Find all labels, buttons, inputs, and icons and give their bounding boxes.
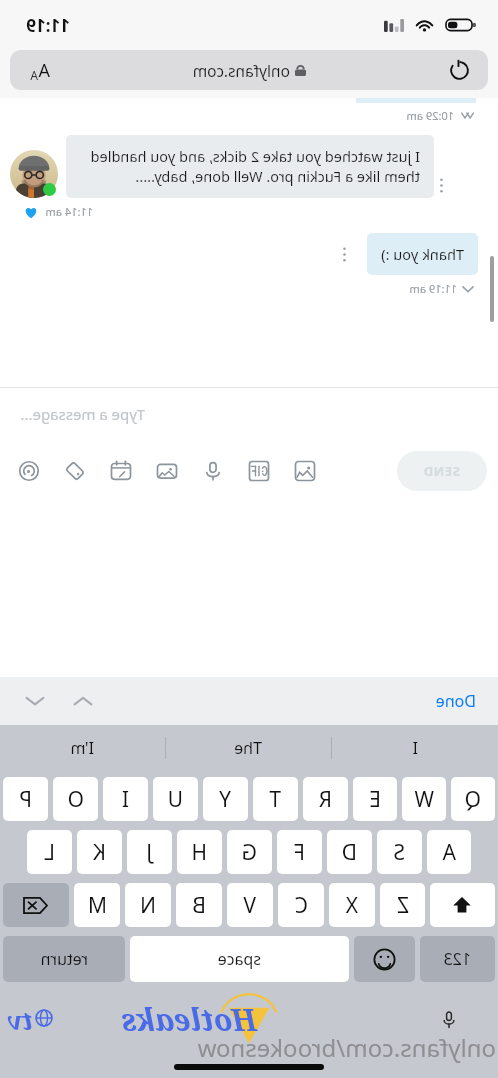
button[interactable]: Emoji [354, 936, 415, 982]
staticText: P [19, 785, 32, 814]
staticText: K [93, 838, 106, 867]
staticText: I [121, 785, 129, 814]
button[interactable]: Reload [444, 54, 476, 86]
staticText: A [442, 838, 456, 867]
staticText: E [369, 785, 381, 814]
staticText: 11:19 [26, 14, 70, 37]
button[interactable]: P [3, 777, 48, 821]
staticText: J [146, 838, 152, 867]
staticText: A [30, 67, 38, 83]
button[interactable]: S [377, 830, 422, 874]
staticText: G [241, 838, 257, 867]
button[interactable]: Schedule [106, 456, 136, 486]
staticText: 11:14 am [45, 204, 93, 219]
button[interactable]: Next field [20, 686, 50, 716]
staticText: I'm [70, 737, 94, 759]
button[interactable]: D [327, 830, 372, 874]
button[interactable]: Done [435, 690, 476, 712]
staticText: H [191, 838, 207, 867]
button[interactable]: A [427, 830, 471, 874]
button[interactable]: R [303, 777, 348, 821]
staticText: tv [6, 1002, 33, 1037]
button[interactable]: H [177, 830, 222, 874]
button[interactable]: F [277, 830, 322, 874]
button[interactable]: V [227, 883, 273, 927]
staticText: T [269, 785, 281, 814]
staticText: 10:29 am [406, 108, 454, 123]
button[interactable]: X [329, 883, 375, 927]
button[interactable]: T [253, 777, 298, 821]
button[interactable]: Message options [337, 241, 353, 267]
button[interactable]: Previous field [68, 686, 98, 716]
staticText: L [43, 838, 55, 867]
staticText: Y [219, 785, 231, 814]
staticText: D [341, 838, 357, 867]
button[interactable]: 123 [420, 936, 495, 982]
button[interactable]: Photo [290, 456, 320, 486]
staticText: F [294, 838, 305, 867]
staticText: W [414, 785, 434, 814]
staticText: I [412, 737, 418, 759]
staticText: R [318, 785, 332, 814]
button[interactable]: Vault [14, 456, 44, 486]
button[interactable]: O [53, 777, 98, 821]
button[interactable]: GIF [244, 456, 274, 486]
staticText: Thank you :) [381, 244, 464, 264]
staticText: return [40, 948, 88, 970]
staticText: U [167, 785, 183, 814]
staticText: space [217, 948, 261, 970]
button[interactable]: Q [451, 777, 495, 821]
button[interactable]: Message options [434, 172, 450, 198]
staticText: SEND [423, 462, 460, 480]
button[interactable]: C [278, 883, 324, 927]
staticText: Type a message... [20, 404, 145, 424]
button[interactable]: E [353, 777, 397, 821]
button[interactable]: Price tag [60, 456, 90, 486]
staticText: C [294, 891, 308, 920]
staticText: V [243, 891, 256, 920]
button[interactable]: SEND [397, 451, 487, 491]
button[interactable]: I [103, 777, 148, 821]
button[interactable]: space [130, 936, 349, 982]
staticText: Done [435, 690, 476, 712]
button[interactable]: Thank you :) [381, 244, 464, 264]
button[interactable]: Reload [10, 50, 488, 90]
staticText: Z [396, 891, 409, 920]
button[interactable]: Media [152, 456, 182, 486]
staticText: Hotleaks [121, 999, 257, 1040]
button[interactable]: Dictation [436, 1007, 462, 1033]
staticText: Q [464, 785, 481, 814]
staticText: 123 [443, 948, 471, 970]
button[interactable]: Voice message [198, 456, 228, 486]
staticText: onlyfans.com [192, 60, 290, 81]
staticText: B [192, 891, 206, 920]
staticText: S [393, 838, 405, 867]
button[interactable]: L [27, 830, 72, 874]
staticText: onlyfans.com/brookesnow [197, 1031, 496, 1064]
button[interactable]: Text size [22, 52, 58, 88]
button[interactable]: B [176, 883, 222, 927]
button[interactable]: W [402, 777, 446, 821]
button[interactable]: G [227, 830, 272, 874]
button[interactable]: Backspace [3, 883, 69, 927]
button[interactable]: The [166, 725, 331, 771]
button[interactable]: return [3, 936, 125, 982]
button[interactable]: Shift [430, 883, 495, 927]
staticText: A [38, 58, 50, 83]
staticText: 11:19 am [409, 281, 457, 296]
button[interactable]: I'm [0, 725, 165, 771]
button[interactable]: M [74, 883, 120, 927]
button[interactable]: N [125, 883, 171, 927]
button[interactable]: I [332, 725, 498, 771]
button[interactable]: K [77, 830, 122, 874]
staticText: O [67, 785, 84, 814]
button[interactable]: Z [380, 883, 425, 927]
staticText: X [345, 891, 358, 920]
staticText: I just watched you take 2 dicks, and you… [80, 146, 420, 187]
button[interactable]: I just watched you take 2 dicks, and you… [80, 146, 420, 187]
staticText: The [234, 737, 262, 759]
button[interactable]: J [127, 830, 172, 874]
button[interactable]: U [153, 777, 198, 821]
button[interactable]: Y [203, 777, 248, 821]
staticText: N [140, 891, 156, 920]
